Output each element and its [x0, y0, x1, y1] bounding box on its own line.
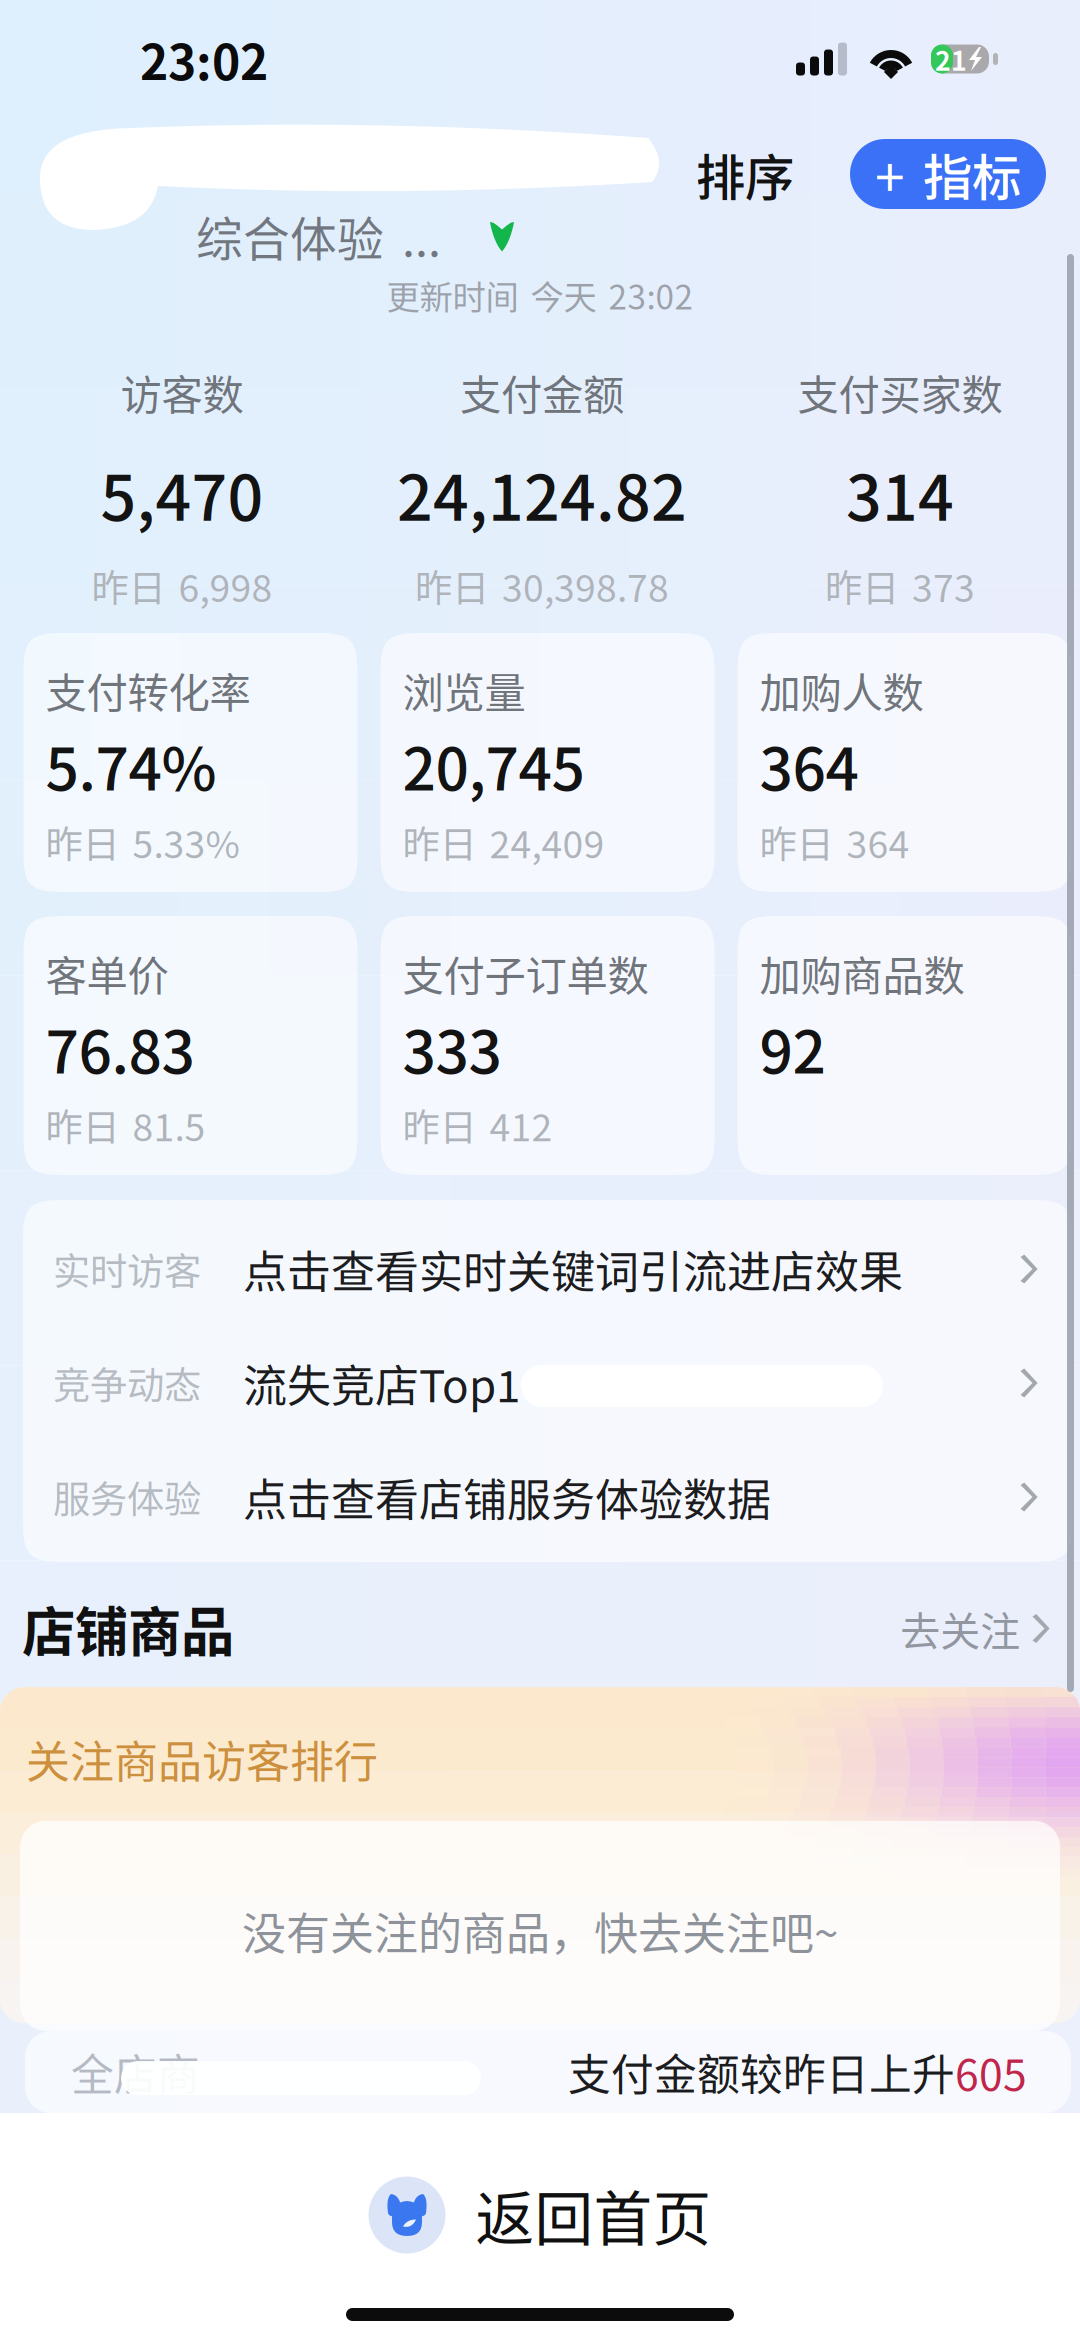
staticText: 支付金额较昨日上升: [568, 2041, 955, 2103]
staticText: 竞争动态: [53, 1356, 201, 1410]
staticText: 流失竞店Top1-: [243, 1351, 535, 1415]
staticText: 364: [759, 722, 858, 807]
staticText: 店铺商品: [22, 1590, 234, 1667]
staticText: 76.83: [45, 1005, 194, 1090]
staticText: 没有关注的商品，快去关注吧~: [242, 1899, 838, 1963]
staticText: 333: [402, 1005, 501, 1090]
staticText: 点击查看实时关键词引流进店效果: [243, 1237, 903, 1301]
staticText: 排序: [696, 138, 794, 210]
staticText: 24,409: [489, 815, 604, 869]
staticText: 昨日: [91, 559, 165, 613]
staticText: 今天: [530, 271, 596, 319]
staticText: 364: [846, 815, 909, 869]
staticText: 昨日: [759, 815, 833, 869]
button[interactable]: +: [850, 139, 1046, 209]
staticText: 20,745: [402, 722, 584, 807]
staticText: 314: [846, 448, 954, 539]
staticText: 昨日: [402, 1098, 476, 1152]
staticText: 综合体验: [196, 202, 384, 270]
staticText: 6,998: [178, 559, 272, 613]
staticText: 5.74%: [45, 722, 216, 807]
staticText: 客单价: [45, 943, 168, 1003]
staticText: 30,398.78: [502, 559, 669, 613]
staticText: 支付子订单数: [402, 943, 648, 1003]
button[interactable]: 服务体验: [23, 1440, 1072, 1554]
staticText: 昨日: [402, 815, 476, 869]
button[interactable]: 实时访客: [23, 1212, 1072, 1326]
staticText: 全店商: [71, 2041, 200, 2103]
button[interactable]: 竞争动态: [23, 1326, 1072, 1440]
staticText: 昨日: [45, 1098, 119, 1152]
button[interactable]: 排序: [684, 138, 806, 210]
staticText: 支付买家数: [797, 362, 1002, 422]
staticText: 412: [489, 1098, 552, 1152]
staticText: 去关注: [900, 1599, 1020, 1657]
staticText: 5.33%: [132, 815, 239, 869]
staticText: 支付转化率: [45, 660, 250, 720]
staticText: 浏览量: [402, 660, 525, 720]
staticText: 实时访客: [53, 1242, 201, 1296]
staticText: 点击查看店铺服务体验数据: [243, 1465, 771, 1529]
staticText: 373: [912, 559, 975, 613]
staticText: 更新时间: [386, 271, 518, 319]
staticText: 23:02: [608, 271, 693, 319]
staticText: 昨日: [825, 559, 899, 613]
button[interactable]: 返回首页: [368, 2167, 711, 2263]
staticText: 21: [935, 40, 967, 78]
staticText: 支付金额: [460, 362, 624, 422]
staticText: 指标: [923, 138, 1021, 210]
staticText: 访客数: [120, 362, 243, 422]
staticText: 加购商品数: [759, 943, 964, 1003]
staticText: +: [875, 135, 905, 213]
staticText: 81.5: [132, 1098, 205, 1152]
staticText: 5,470: [100, 448, 263, 539]
staticText: ...: [402, 202, 441, 270]
staticText: 昨日: [415, 559, 489, 613]
staticText: 服务体验: [53, 1470, 201, 1524]
staticText: 92: [759, 1005, 825, 1090]
staticText: 加购人数: [759, 660, 923, 720]
staticText: 24,124.82: [397, 448, 687, 539]
staticText: 关注商品访客排行: [26, 1727, 378, 1791]
staticText: 昨日: [45, 815, 119, 869]
button[interactable]: 综合体验: [196, 210, 515, 262]
staticText: 返回首页: [475, 2172, 711, 2257]
staticText: 23:02: [140, 24, 268, 94]
staticText: 605: [955, 2041, 1027, 2103]
button[interactable]: 去关注: [900, 1590, 1054, 1666]
